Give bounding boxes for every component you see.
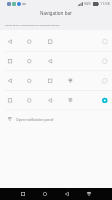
staticText: Please select a combination of navigatio… xyxy=(5,23,60,26)
button[interactable]: Recents xyxy=(12,188,34,200)
button[interactable]: Navigation combination 1 xyxy=(0,32,112,52)
staticText: Open notification panel xyxy=(16,117,54,122)
staticText: 11:58 xyxy=(100,1,110,6)
staticText: 94% xyxy=(84,1,92,6)
button[interactable]: Home xyxy=(34,188,56,200)
button[interactable]: Back xyxy=(56,188,78,200)
button[interactable]: Navigation combination 3 xyxy=(0,71,112,91)
staticText: Navigation bar xyxy=(40,10,72,16)
button[interactable]: Navigation combination 4 xyxy=(0,91,112,111)
button[interactable]: Navigation combination 2 xyxy=(0,51,112,71)
button[interactable]: Notifications xyxy=(78,188,100,200)
